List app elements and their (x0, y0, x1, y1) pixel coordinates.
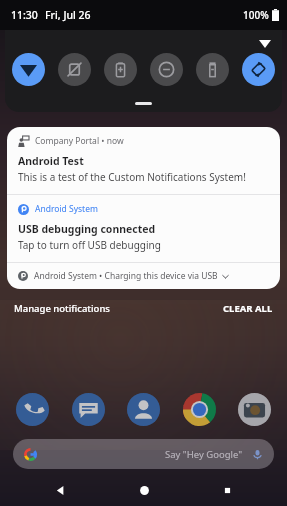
staticText: CLEAR ALL (223, 302, 273, 315)
button[interactable]: Back (37, 479, 83, 501)
staticText: Tap to turn off USB debugging (18, 238, 161, 252)
button[interactable]: Messages (72, 393, 105, 426)
staticText: Android System • Charging this device vi… (34, 270, 218, 282)
button[interactable]: Do Not Disturb (150, 53, 183, 86)
staticText: Fri, Jul 26 (45, 8, 91, 22)
staticText: Say "Hey Google" (165, 448, 243, 461)
staticText: USB debugging connected (18, 222, 156, 236)
button[interactable]: Recents (204, 479, 250, 501)
button[interactable]: Mute (58, 53, 91, 86)
staticText: Manage notifications (14, 302, 110, 315)
staticText: 100% (243, 8, 269, 22)
button[interactable]: Wi-Fi (12, 53, 45, 86)
button[interactable]: Company Portal • now (7, 127, 280, 194)
other: Wi-Fi status (259, 37, 271, 49)
button[interactable]: Phone (16, 393, 49, 426)
staticText: Android System (35, 203, 98, 215)
staticText: Company Portal • now (35, 135, 124, 147)
button[interactable]: Battery Saver (104, 53, 137, 86)
button[interactable]: Chrome (183, 393, 216, 426)
staticText: 11:30 (11, 8, 38, 22)
button[interactable]: Camera (238, 393, 271, 426)
button[interactable]: Contacts (127, 393, 160, 426)
button[interactable]: CLEAR ALL (223, 298, 273, 319)
button[interactable]: Auto-rotate (242, 53, 275, 86)
staticText: Android Test (18, 154, 84, 168)
button[interactable]: Android System (7, 195, 280, 262)
button[interactable]: Android System • Charging this device vi… (7, 263, 280, 289)
button[interactable]: Flashlight (196, 53, 229, 86)
button[interactable]: Manage notifications (14, 298, 110, 319)
staticText: This is a test of the Custom Notificatio… (18, 170, 246, 184)
button[interactable]: Home (121, 479, 167, 501)
button[interactable]: Say "Hey Google" (13, 439, 274, 469)
